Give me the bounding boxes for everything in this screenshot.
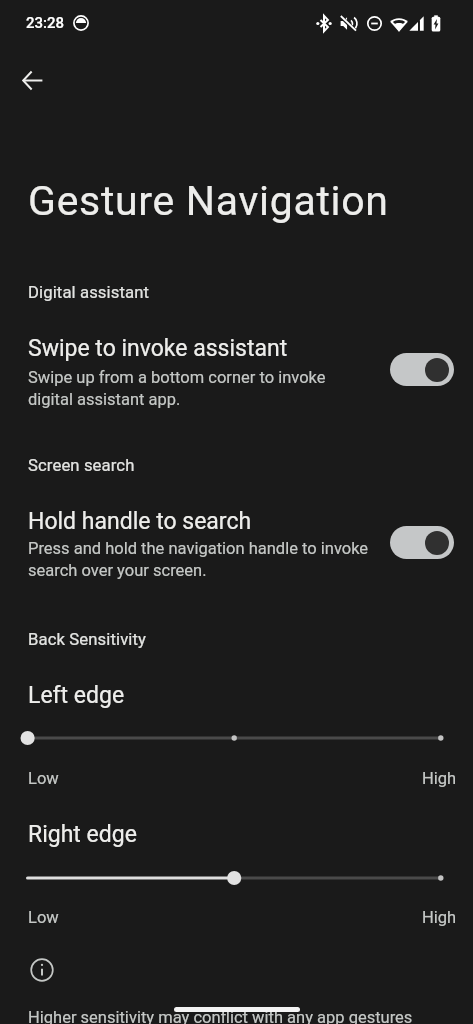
button[interactable]: Swipe to invoke assistant, on [390, 353, 454, 386]
staticText: Press and hold the navigation handle to … [28, 539, 369, 580]
staticText: Screen search [28, 456, 135, 476]
staticText: Higher sensitivity may conflict with any… [28, 1008, 413, 1024]
staticText: Back Sensitivity [28, 630, 147, 650]
staticText: Swipe to invoke assistant [28, 335, 288, 362]
button[interactable]: Right edge back sensitivity [0, 863, 473, 893]
staticText: Swipe up from a bottom corner to invoke … [28, 368, 326, 409]
staticText: Hold handle to search [28, 508, 252, 535]
button[interactable]: Left edge back sensitivity [0, 723, 473, 753]
staticText: Digital assistant [28, 283, 150, 303]
staticText: Left edge [28, 682, 125, 709]
button[interactable]: Navigate up [12, 60, 52, 100]
staticText: Low [28, 908, 59, 927]
staticText: 23:28 [26, 14, 65, 32]
button[interactable]: More information [22, 950, 62, 990]
button[interactable]: Hold handle to search, on [390, 526, 454, 559]
staticText: Gesture Navigation [28, 177, 389, 225]
staticText: Right edge [28, 821, 137, 848]
staticText: Low [28, 769, 59, 788]
staticText: High [422, 769, 457, 788]
staticText: High [422, 908, 457, 927]
